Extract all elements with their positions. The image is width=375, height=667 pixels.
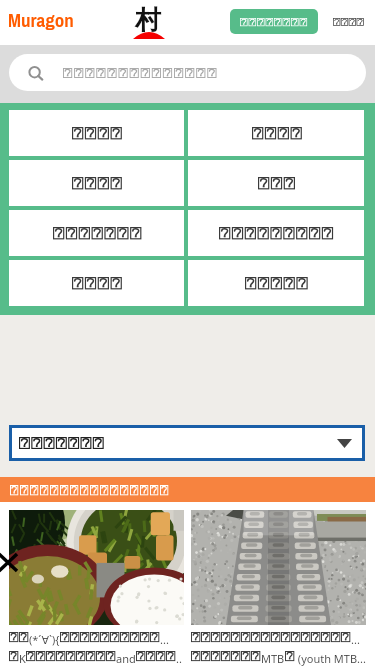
button[interactable]: Expand <box>12 428 362 458</box>
button[interactable]: (*´∀`){ <box>9 510 184 667</box>
staticText: ... <box>351 632 360 647</box>
other: Search <box>27 66 45 80</box>
staticText: K <box>19 651 26 666</box>
staticText: (*´∀`){ <box>29 632 60 647</box>
button[interactable] <box>9 160 184 206</box>
button[interactable] <box>188 160 364 206</box>
button[interactable] <box>9 210 184 256</box>
button[interactable]: Search <box>9 54 366 91</box>
button[interactable]: ... <box>191 510 366 666</box>
other: Previous <box>0 554 17 571</box>
staticText: ... <box>176 651 184 667</box>
button[interactable] <box>188 260 364 306</box>
staticText: Muragon <box>8 7 74 33</box>
button[interactable] <box>0 477 375 502</box>
other: Expand <box>337 439 352 448</box>
staticText: and <box>116 651 136 666</box>
staticText: MTB <box>261 651 285 666</box>
button[interactable] <box>326 9 370 34</box>
button[interactable] <box>9 110 184 156</box>
staticText: (youth MTB... <box>295 651 366 666</box>
button[interactable] <box>230 9 318 34</box>
button[interactable] <box>9 260 184 306</box>
staticText: 村 <box>135 4 161 37</box>
button[interactable] <box>188 110 364 156</box>
staticText: ... <box>160 632 169 647</box>
button[interactable] <box>188 210 364 256</box>
